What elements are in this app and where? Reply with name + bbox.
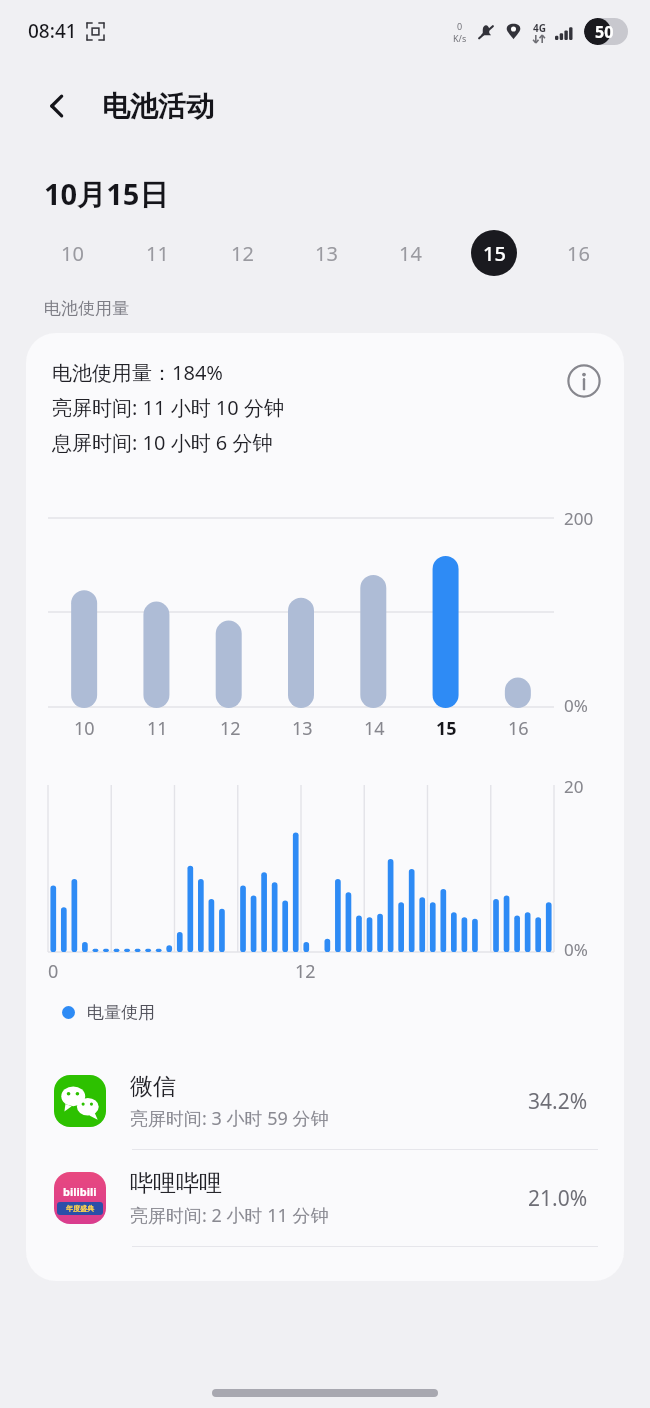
button[interactable]: 16 (536, 214, 620, 292)
button[interactable]: 12 (200, 214, 284, 292)
staticText: 10月15日 (44, 174, 169, 214)
staticText: 08:41 (28, 18, 77, 44)
button[interactable]: Information (562, 359, 606, 403)
button[interactable]: 微信 (26, 1053, 624, 1149)
staticText: 14 (364, 716, 385, 741)
staticText: 16 (567, 240, 590, 267)
staticText: 12 (220, 716, 241, 741)
button[interactable]: 13 (284, 214, 368, 292)
staticText: 电量使用 (87, 1002, 155, 1023)
staticText: 16 (508, 716, 529, 741)
staticText: 0 (48, 959, 59, 984)
staticText: 34.2% (528, 1087, 588, 1116)
staticText: 21.0% (528, 1184, 588, 1213)
staticText: 10 (61, 240, 84, 267)
staticText: 电池活动 (102, 89, 214, 124)
staticText: 亮屏时间: 11 小时 10 分钟 (52, 394, 284, 421)
staticText: 13 (315, 240, 338, 267)
button[interactable]: 14 (368, 214, 452, 292)
staticText: 4G (533, 21, 546, 35)
button[interactable]: Back (34, 83, 80, 129)
staticText: 电池使用量 (44, 298, 129, 319)
button[interactable]: 15 (452, 214, 536, 292)
staticText: 0% (564, 938, 588, 961)
staticText: 电池使用量：184% (52, 359, 223, 386)
button[interactable]: 11 (115, 214, 200, 292)
staticText: 微信 (130, 1072, 176, 1101)
button[interactable]: bilibili (26, 1150, 624, 1246)
staticText: 0 (457, 20, 463, 32)
staticText: 11 (146, 240, 169, 267)
staticText: bilibili (63, 1184, 97, 1199)
staticText: 亮屏时间: 2 小时 11 分钟 (130, 1203, 329, 1228)
staticText: K/s (453, 32, 467, 44)
staticText: 年度盛典 (66, 1204, 94, 1213)
staticText: 15 (436, 716, 457, 741)
staticText: 14 (399, 240, 422, 267)
staticText: 13 (292, 716, 313, 741)
staticText: 200 (564, 507, 594, 530)
staticText: 15 (483, 240, 506, 267)
button[interactable]: 10 (30, 214, 115, 292)
staticText: 哔哩哔哩 (130, 1169, 222, 1198)
staticText: 12 (231, 240, 254, 267)
staticText: 0% (564, 694, 588, 717)
staticText: 11 (147, 716, 168, 741)
staticText: 息屏时间: 10 小时 6 分钟 (52, 429, 273, 456)
staticText: 50 (595, 21, 614, 43)
staticText: 10 (74, 716, 95, 741)
staticText: 12 (295, 959, 316, 984)
staticText: 20 (564, 775, 584, 798)
staticText: 亮屏时间: 3 小时 59 分钟 (130, 1106, 329, 1131)
